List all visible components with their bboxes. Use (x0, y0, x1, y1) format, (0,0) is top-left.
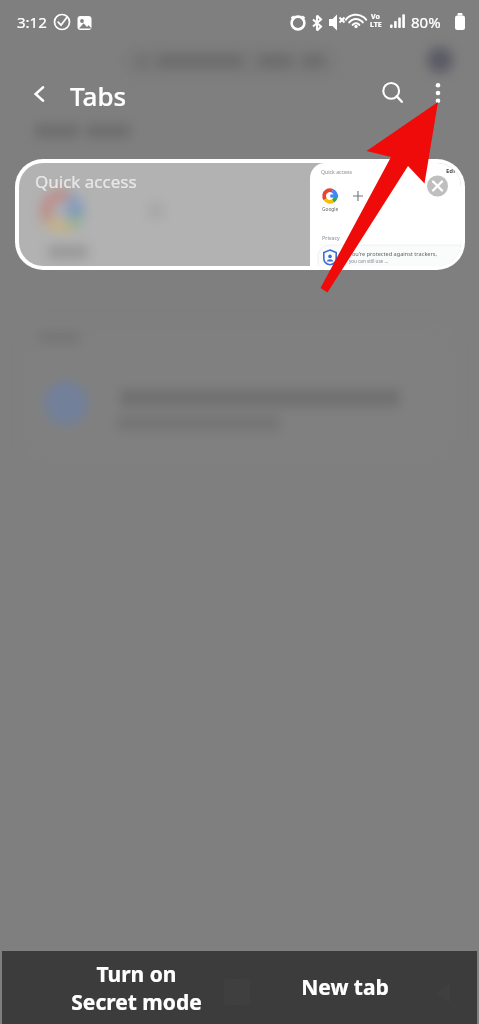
staticText: Tabs (70, 78, 127, 113)
button[interactable]: New tab (265, 951, 425, 1024)
button[interactable]: Turn on Secret mode (34, 951, 239, 1024)
staticText: You're protected against trackers, (349, 250, 438, 258)
staticText: 80% (411, 12, 441, 32)
staticText: Quick access (321, 168, 352, 175)
staticText: New tab (301, 973, 389, 1002)
staticText: Edi (446, 167, 455, 175)
staticText: Vo (371, 12, 380, 22)
staticText: Quick access (35, 170, 137, 193)
button[interactable]: More options (419, 74, 457, 112)
button[interactable]: Search (374, 74, 412, 112)
staticText: you can still use ... (349, 258, 389, 264)
button[interactable]: Back (22, 76, 58, 112)
staticText: 3:12 (17, 12, 47, 32)
staticText: Turn on Secret mode (71, 960, 202, 1016)
staticText: Google (322, 206, 339, 213)
staticText: Privacy (322, 234, 340, 241)
staticText: LTE (370, 20, 382, 30)
button[interactable]: Quick access (15, 159, 465, 270)
